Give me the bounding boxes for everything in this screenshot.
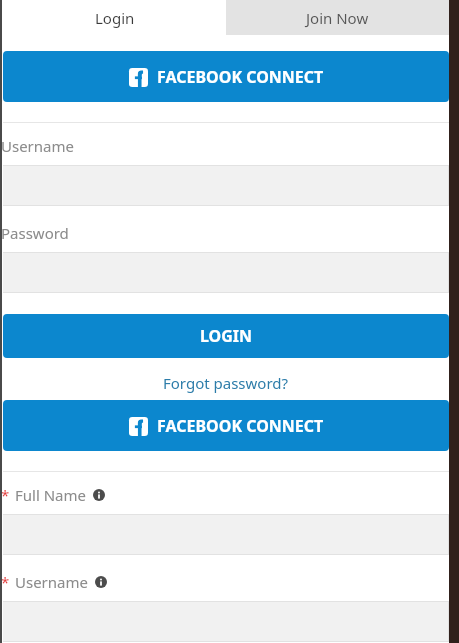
other: More info about Username: [95, 576, 107, 588]
button[interactable]: FACEBOOK CONNECT: [3, 51, 449, 102]
staticText: FACEBOOK CONNECT: [157, 415, 324, 437]
button[interactable]: LOGIN: [3, 314, 449, 358]
staticText: Password: [1, 223, 69, 243]
staticText: FACEBOOK CONNECT: [157, 66, 324, 88]
button[interactable]: [3, 165, 449, 206]
staticText: LOGIN: [200, 325, 253, 347]
button[interactable]: Forgot password?: [163, 373, 289, 393]
staticText: Full Name: [15, 485, 86, 505]
button[interactable]: [3, 252, 449, 293]
button[interactable]: [3, 514, 449, 555]
staticText: Username: [1, 136, 74, 156]
staticText: Join Now: [306, 8, 369, 28]
staticText: Username: [15, 572, 88, 592]
staticText: *: [1, 485, 10, 505]
button[interactable]: Login: [3, 0, 226, 35]
staticText: *: [1, 572, 10, 592]
button[interactable]: FACEBOOK CONNECT: [3, 400, 449, 451]
other: More info about Full Name: [93, 489, 105, 501]
button[interactable]: Join Now: [226, 0, 449, 35]
button[interactable]: [3, 601, 449, 642]
staticText: Login: [95, 8, 135, 28]
